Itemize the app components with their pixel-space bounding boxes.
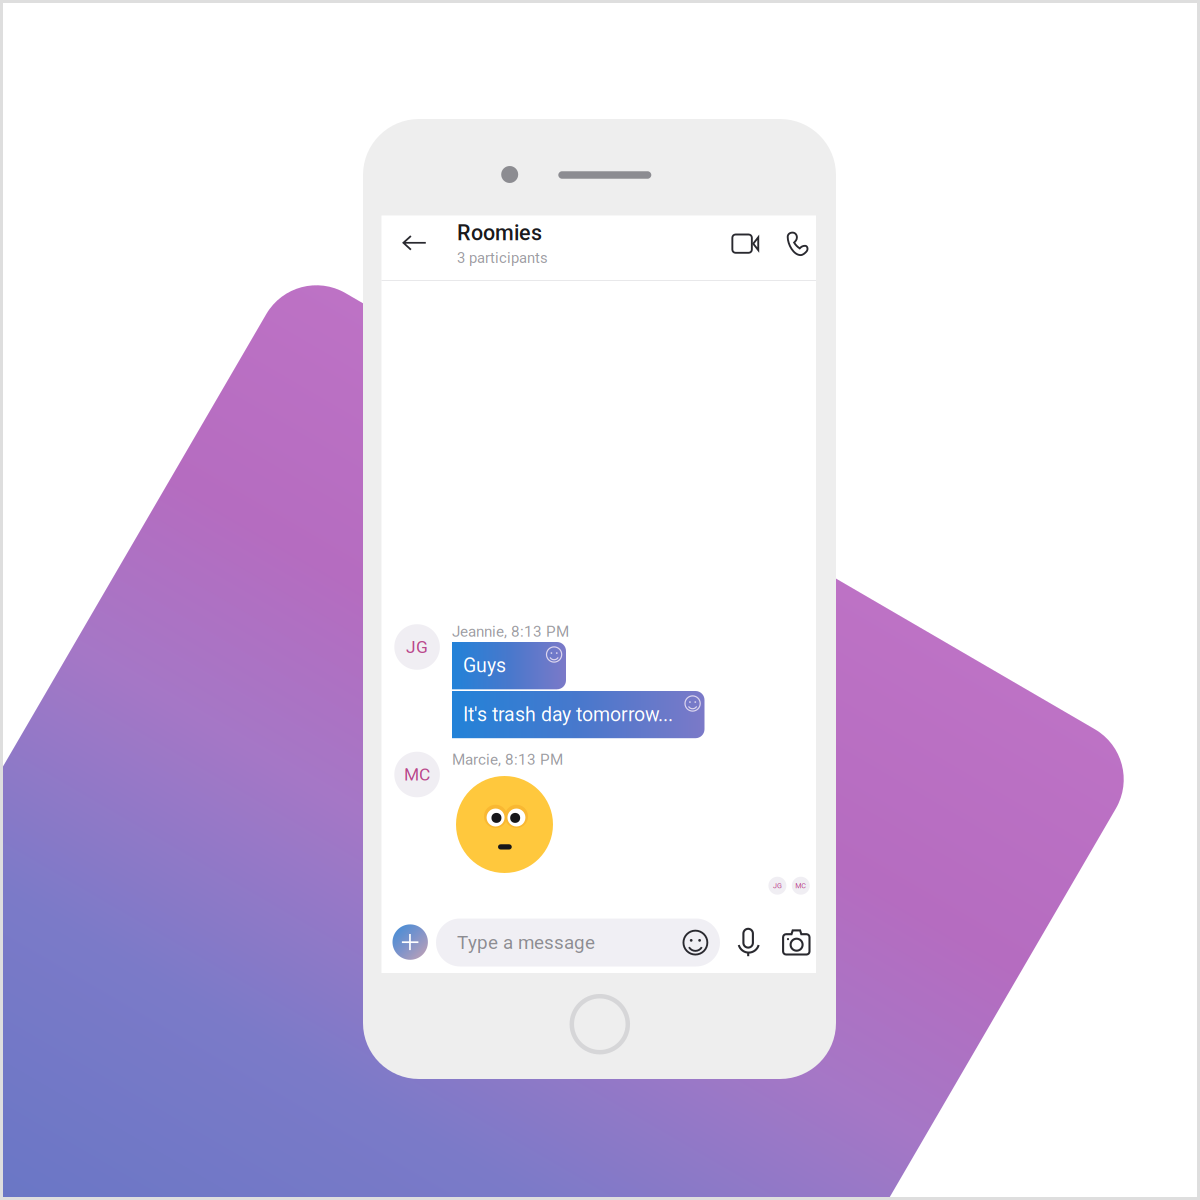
staticText: Jeannie, 8:13 PM [452,623,569,640]
staticText: Type a message [457,931,595,953]
staticText: Roomies [457,220,542,246]
button[interactable]: Video call [725,223,767,265]
button[interactable]: Record voice message [731,925,767,961]
staticText: It's trash day tomorrow... [463,703,673,726]
button[interactable]: Add attachment [392,924,428,960]
staticText: MC [795,881,806,890]
staticText: Marcie, 8:13 PM [452,751,563,768]
staticText: 3 participants [457,249,548,267]
staticText: Guys [463,654,506,677]
staticText: MC [404,764,430,785]
button[interactable]: Back [389,211,441,275]
button[interactable]: Voice call [776,223,818,265]
button[interactable]: Camera [779,924,815,960]
button[interactable]: Emoji [678,926,712,960]
staticText: JG [406,637,428,657]
staticText: JG [773,881,782,890]
